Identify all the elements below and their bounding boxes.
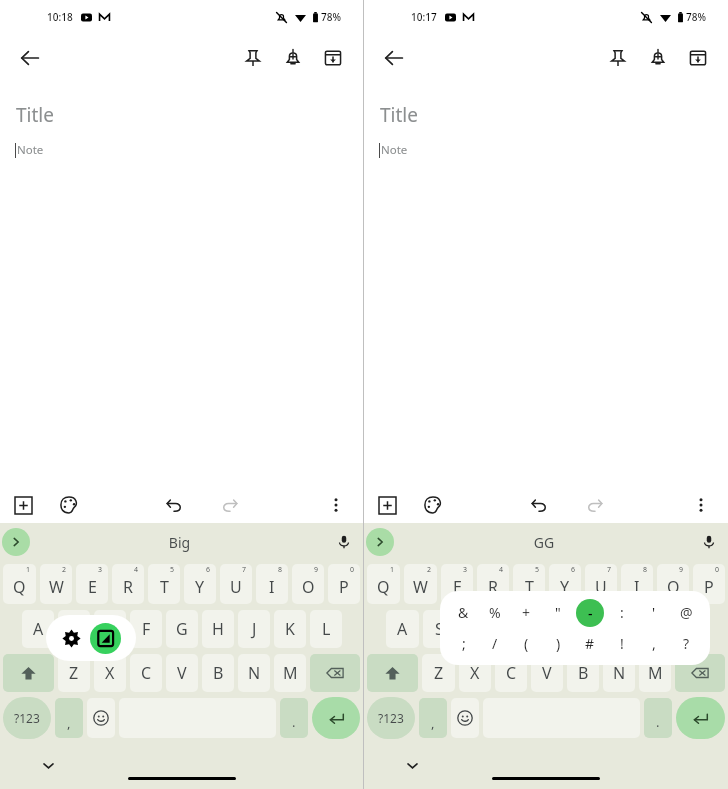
button[interactable]: K (274, 610, 306, 648)
button[interactable]: 2 (40, 564, 72, 604)
button[interactable]: D (459, 610, 491, 648)
button[interactable]: F (130, 610, 162, 648)
button[interactable]: % (479, 597, 510, 628)
button[interactable]: F (495, 610, 527, 648)
button[interactable]: 6 (184, 564, 216, 604)
button[interactable]: Color palette (54, 490, 84, 520)
button[interactable]: 1 (367, 564, 400, 604)
button[interactable]: Redo (215, 490, 245, 520)
button[interactable]: 0 (693, 564, 725, 604)
button[interactable]: S (423, 610, 455, 648)
button[interactable]: Z (422, 654, 455, 692)
button[interactable]: V (166, 654, 198, 692)
button[interactable]: Pin (233, 38, 273, 78)
button[interactable]: 3 (76, 564, 108, 604)
button[interactable]: G (531, 610, 563, 648)
button[interactable]: N (603, 654, 635, 692)
button[interactable]: 7 (585, 564, 617, 604)
button[interactable]: M (274, 654, 306, 692)
button[interactable]: , (638, 628, 670, 659)
button[interactable]: , (419, 698, 447, 738)
button[interactable]: ?123 (367, 697, 415, 739)
button[interactable]: Voice input (694, 527, 724, 557)
button[interactable]: Archive (313, 38, 353, 78)
button[interactable]: ( (510, 628, 542, 659)
button[interactable]: 4 (112, 564, 144, 604)
button[interactable]: B (202, 654, 234, 692)
button[interactable]: ; (448, 628, 479, 659)
button[interactable]: 3 (441, 564, 473, 604)
button[interactable]: Enter (312, 697, 360, 739)
button[interactable]: Keyboard settings (46, 615, 136, 661)
button[interactable]: Enter (676, 697, 725, 739)
button[interactable]: More options (686, 490, 716, 520)
button[interactable]: 9 (657, 564, 689, 604)
button[interactable]: N (238, 654, 270, 692)
button[interactable]: J (238, 610, 270, 648)
button[interactable]: GG (394, 533, 694, 552)
button[interactable]: X (459, 654, 491, 692)
button[interactable]: C (130, 654, 162, 692)
button[interactable]: & (448, 597, 479, 628)
button[interactable]: Color palette (418, 490, 448, 520)
button[interactable]: D (94, 610, 126, 648)
button[interactable]: Back (374, 38, 414, 78)
button[interactable]: ) (542, 628, 574, 659)
button[interactable]: S (58, 610, 90, 648)
button[interactable]: Undo (159, 490, 189, 520)
button[interactable]: , (55, 698, 83, 738)
button[interactable]: Voice input (329, 527, 359, 557)
button[interactable]: K (639, 610, 671, 648)
button[interactable]: . (280, 698, 308, 738)
button[interactable]: 2 (404, 564, 437, 604)
button[interactable]: Big (30, 533, 329, 552)
button[interactable]: Add (8, 490, 38, 520)
button[interactable]: Back (10, 38, 50, 78)
button[interactable]: 1 (3, 564, 36, 604)
button[interactable]: 7 (220, 564, 252, 604)
button[interactable]: M (639, 654, 671, 692)
button[interactable]: L (675, 610, 707, 648)
button[interactable]: . (644, 698, 672, 738)
button[interactable]: Backspace (310, 654, 360, 692)
button[interactable]: A (386, 610, 419, 648)
button[interactable]: 8 (256, 564, 288, 604)
button[interactable]: More suggestions (366, 528, 394, 556)
button[interactable]: Add reminder (273, 38, 313, 78)
button[interactable]: " (542, 597, 574, 628)
button[interactable]: L (310, 610, 342, 648)
button[interactable]: X (94, 654, 126, 692)
button[interactable]: H (202, 610, 234, 648)
button[interactable]: Redo (580, 490, 610, 520)
button[interactable]: C (495, 654, 527, 692)
button[interactable]: Z (58, 654, 90, 692)
button[interactable]: ?123 (3, 697, 51, 739)
button[interactable]: 8 (621, 564, 653, 604)
button[interactable]: ! (606, 628, 638, 659)
button[interactable]: More options (321, 490, 351, 520)
button[interactable]: Backspace (675, 654, 725, 692)
button[interactable]: 0 (328, 564, 360, 604)
button[interactable]: ? (670, 628, 702, 659)
button[interactable]: B (567, 654, 599, 692)
button[interactable]: V (531, 654, 563, 692)
button[interactable]: 5 (148, 564, 180, 604)
button[interactable]: / (479, 628, 510, 659)
button[interactable]: G (166, 610, 198, 648)
button[interactable]: 6 (549, 564, 581, 604)
button[interactable]: + (510, 597, 542, 628)
button[interactable]: ' (638, 597, 670, 628)
button[interactable]: Emoji (87, 698, 115, 738)
button[interactable]: Emoji (451, 698, 479, 738)
button[interactable]: Add reminder (638, 38, 678, 78)
button[interactable]: : (606, 597, 638, 628)
button[interactable]: 4 (477, 564, 509, 604)
button[interactable]: H (567, 610, 599, 648)
button[interactable]: More suggestions (2, 528, 30, 556)
button[interactable]: Hide keyboard (400, 753, 424, 777)
button[interactable]: 5 (513, 564, 545, 604)
button[interactable]: Shift (3, 654, 54, 692)
button[interactable]: 9 (292, 564, 324, 604)
